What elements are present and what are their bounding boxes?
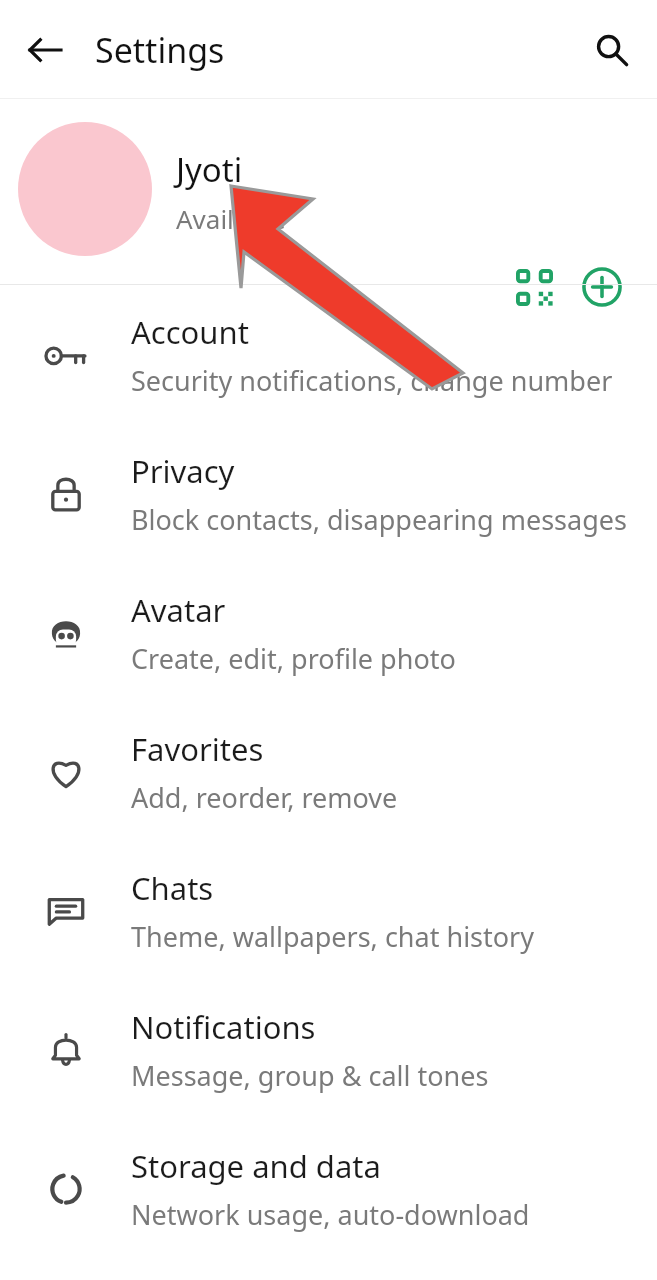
staticText: Security notifications, change number bbox=[131, 362, 613, 399]
button[interactable]: Avatar bbox=[0, 563, 657, 702]
staticText: Favorites bbox=[131, 728, 264, 770]
staticText: Create, edit, profile photo bbox=[131, 640, 456, 677]
staticText: Privacy bbox=[131, 450, 235, 492]
staticText: Storage and data bbox=[131, 1145, 381, 1187]
button[interactable]: Privacy bbox=[0, 424, 657, 563]
staticText: Chats bbox=[131, 867, 214, 909]
staticText: Notifications bbox=[131, 1006, 316, 1048]
staticText: Account bbox=[131, 311, 249, 353]
staticText: Add, reorder, remove bbox=[131, 779, 398, 816]
button[interactable]: Favorites bbox=[0, 702, 657, 841]
button[interactable]: Chats bbox=[0, 841, 657, 980]
button[interactable]: Search bbox=[581, 19, 643, 81]
button[interactable]: QR code bbox=[505, 258, 563, 316]
staticText: Network usage, auto-download bbox=[131, 1196, 530, 1233]
staticText: Settings bbox=[95, 27, 225, 73]
button[interactable]: Add account bbox=[573, 258, 631, 316]
staticText: Available bbox=[176, 201, 286, 236]
staticText: Message, group & call tones bbox=[131, 1057, 489, 1094]
staticText: Jyoti bbox=[176, 147, 243, 192]
button[interactable]: Storage and data bbox=[0, 1119, 657, 1258]
button[interactable]: Back bbox=[14, 19, 76, 81]
button[interactable]: Notifications bbox=[0, 980, 657, 1119]
staticText: Avatar bbox=[131, 589, 226, 631]
button[interactable]: Account bbox=[0, 285, 657, 424]
button[interactable]: Jyoti bbox=[0, 99, 657, 285]
staticText: Block contacts, disappearing messages bbox=[131, 501, 627, 538]
staticText: Theme, wallpapers, chat history bbox=[131, 918, 535, 955]
